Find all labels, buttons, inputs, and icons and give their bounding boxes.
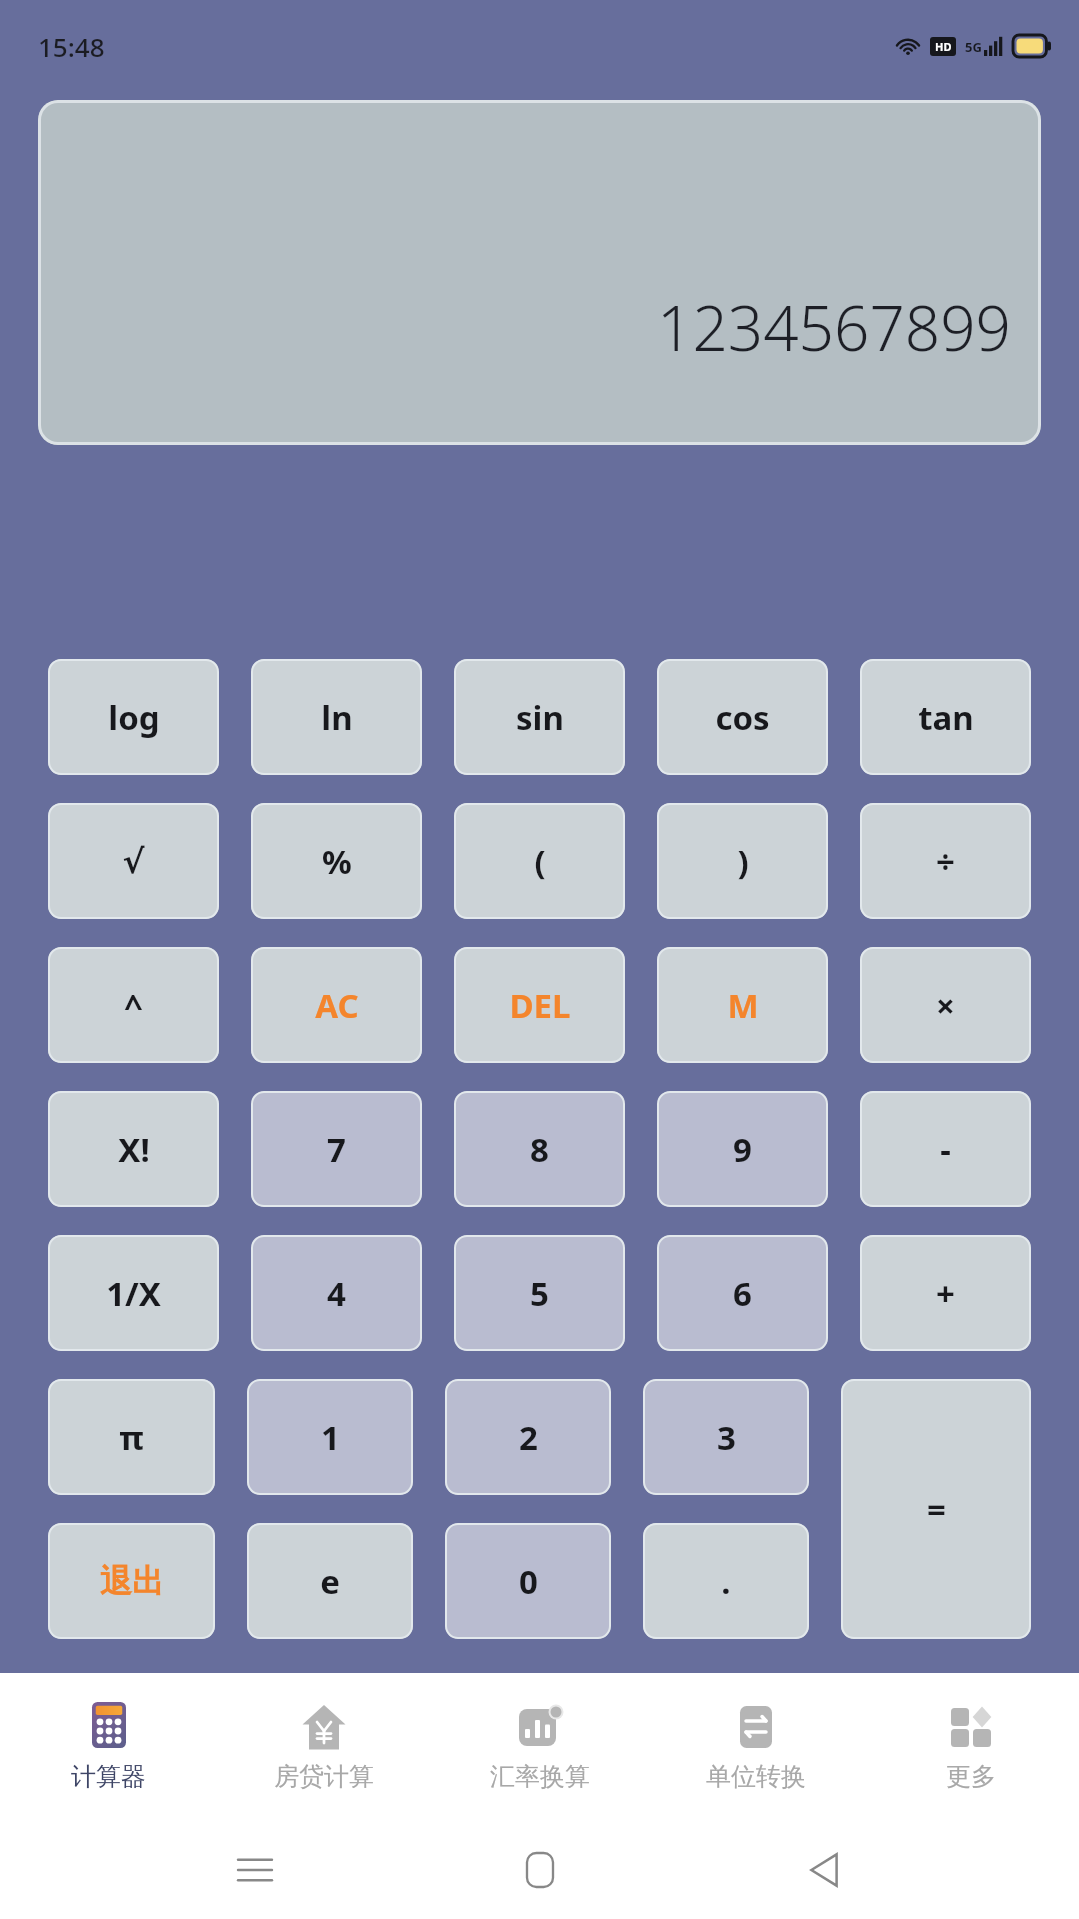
button[interactable]: 房贷计算 [216, 1673, 431, 1820]
staticText: = [927, 1487, 946, 1532]
button[interactable]: 1234567899 [38, 100, 1041, 445]
staticText: X! [118, 1127, 150, 1172]
staticText: e [320, 1559, 340, 1604]
button[interactable]: 退出 [48, 1523, 215, 1639]
staticText: HD [935, 39, 952, 54]
button[interactable]: 汇率换算 [432, 1673, 647, 1820]
staticText: M [727, 983, 759, 1028]
button[interactable]: ( [454, 803, 625, 919]
button[interactable]: 9 [657, 1091, 828, 1207]
button[interactable]: 2 [445, 1379, 611, 1495]
staticText: - [940, 1127, 951, 1172]
staticText: 5G [965, 38, 982, 56]
button[interactable]: 1/X [48, 1235, 219, 1351]
button[interactable]: 更多 [863, 1673, 1078, 1820]
button[interactable]: e [247, 1523, 413, 1639]
button[interactable]: 单位转换 [648, 1673, 863, 1820]
button[interactable]: 计算器 [1, 1673, 216, 1820]
button[interactable]: Back [794, 1840, 854, 1900]
button[interactable]: AC [251, 947, 422, 1063]
staticText: 1234567899 [656, 285, 1011, 369]
button[interactable]: 4 [251, 1235, 422, 1351]
staticText: + [936, 1271, 955, 1316]
staticText: 更多 [946, 1761, 996, 1792]
button[interactable]: Recents [225, 1840, 285, 1900]
staticText: sin [516, 695, 564, 740]
staticText: 4 [327, 1271, 346, 1316]
button[interactable]: - [860, 1091, 1031, 1207]
staticText: π [119, 1415, 144, 1460]
staticText: log [108, 695, 160, 740]
staticText: 15:48 [38, 29, 105, 64]
button[interactable]: π [48, 1379, 215, 1495]
staticText: × [936, 983, 955, 1028]
staticText: 6 [733, 1271, 752, 1316]
button[interactable]: M [657, 947, 828, 1063]
button[interactable]: ^ [48, 947, 219, 1063]
button[interactable]: cos [657, 659, 828, 775]
button[interactable]: + [860, 1235, 1031, 1351]
button[interactable]: Home [510, 1840, 570, 1900]
button[interactable]: 8 [454, 1091, 625, 1207]
staticText: DEL [509, 983, 571, 1028]
staticText: 3 [717, 1415, 736, 1460]
button[interactable]: X! [48, 1091, 219, 1207]
staticText: 5 [530, 1271, 549, 1316]
staticText: 7 [327, 1127, 346, 1172]
staticText: 2 [519, 1415, 538, 1460]
button[interactable]: 7 [251, 1091, 422, 1207]
staticText: ) [737, 839, 749, 884]
button[interactable]: DEL [454, 947, 625, 1063]
button[interactable]: ln [251, 659, 422, 775]
staticText: ^ [124, 983, 143, 1028]
button[interactable]: % [251, 803, 422, 919]
button[interactable]: 5 [454, 1235, 625, 1351]
button[interactable]: √ [48, 803, 219, 919]
staticText: % [322, 839, 352, 884]
staticText: 计算器 [71, 1761, 146, 1792]
staticText: 退出 [100, 1561, 164, 1601]
button[interactable]: ) [657, 803, 828, 919]
button[interactable]: 0 [445, 1523, 611, 1639]
staticText: 1 [321, 1415, 340, 1460]
staticText: 汇率换算 [490, 1761, 590, 1792]
staticText: ( [534, 839, 546, 884]
button[interactable]: 1 [247, 1379, 413, 1495]
button[interactable]: 6 [657, 1235, 828, 1351]
button[interactable]: 3 [643, 1379, 809, 1495]
staticText: 房贷计算 [274, 1761, 374, 1792]
staticText: 1/X [106, 1271, 161, 1316]
staticText: . [721, 1559, 731, 1604]
staticText: 8 [530, 1127, 549, 1172]
button[interactable]: sin [454, 659, 625, 775]
staticText: √ [122, 842, 145, 880]
button[interactable]: ÷ [860, 803, 1031, 919]
staticText: ln [321, 695, 353, 740]
staticText: 0 [519, 1559, 538, 1604]
staticText: cos [715, 695, 770, 740]
button[interactable]: = [841, 1379, 1031, 1639]
button[interactable]: tan [860, 659, 1031, 775]
staticText: 单位转换 [706, 1761, 806, 1792]
staticText: AC [315, 983, 359, 1028]
staticText: 9 [733, 1127, 752, 1172]
button[interactable]: log [48, 659, 219, 775]
button[interactable]: . [643, 1523, 809, 1639]
button[interactable]: × [860, 947, 1031, 1063]
staticText: ÷ [936, 839, 955, 884]
staticText: tan [918, 695, 974, 740]
